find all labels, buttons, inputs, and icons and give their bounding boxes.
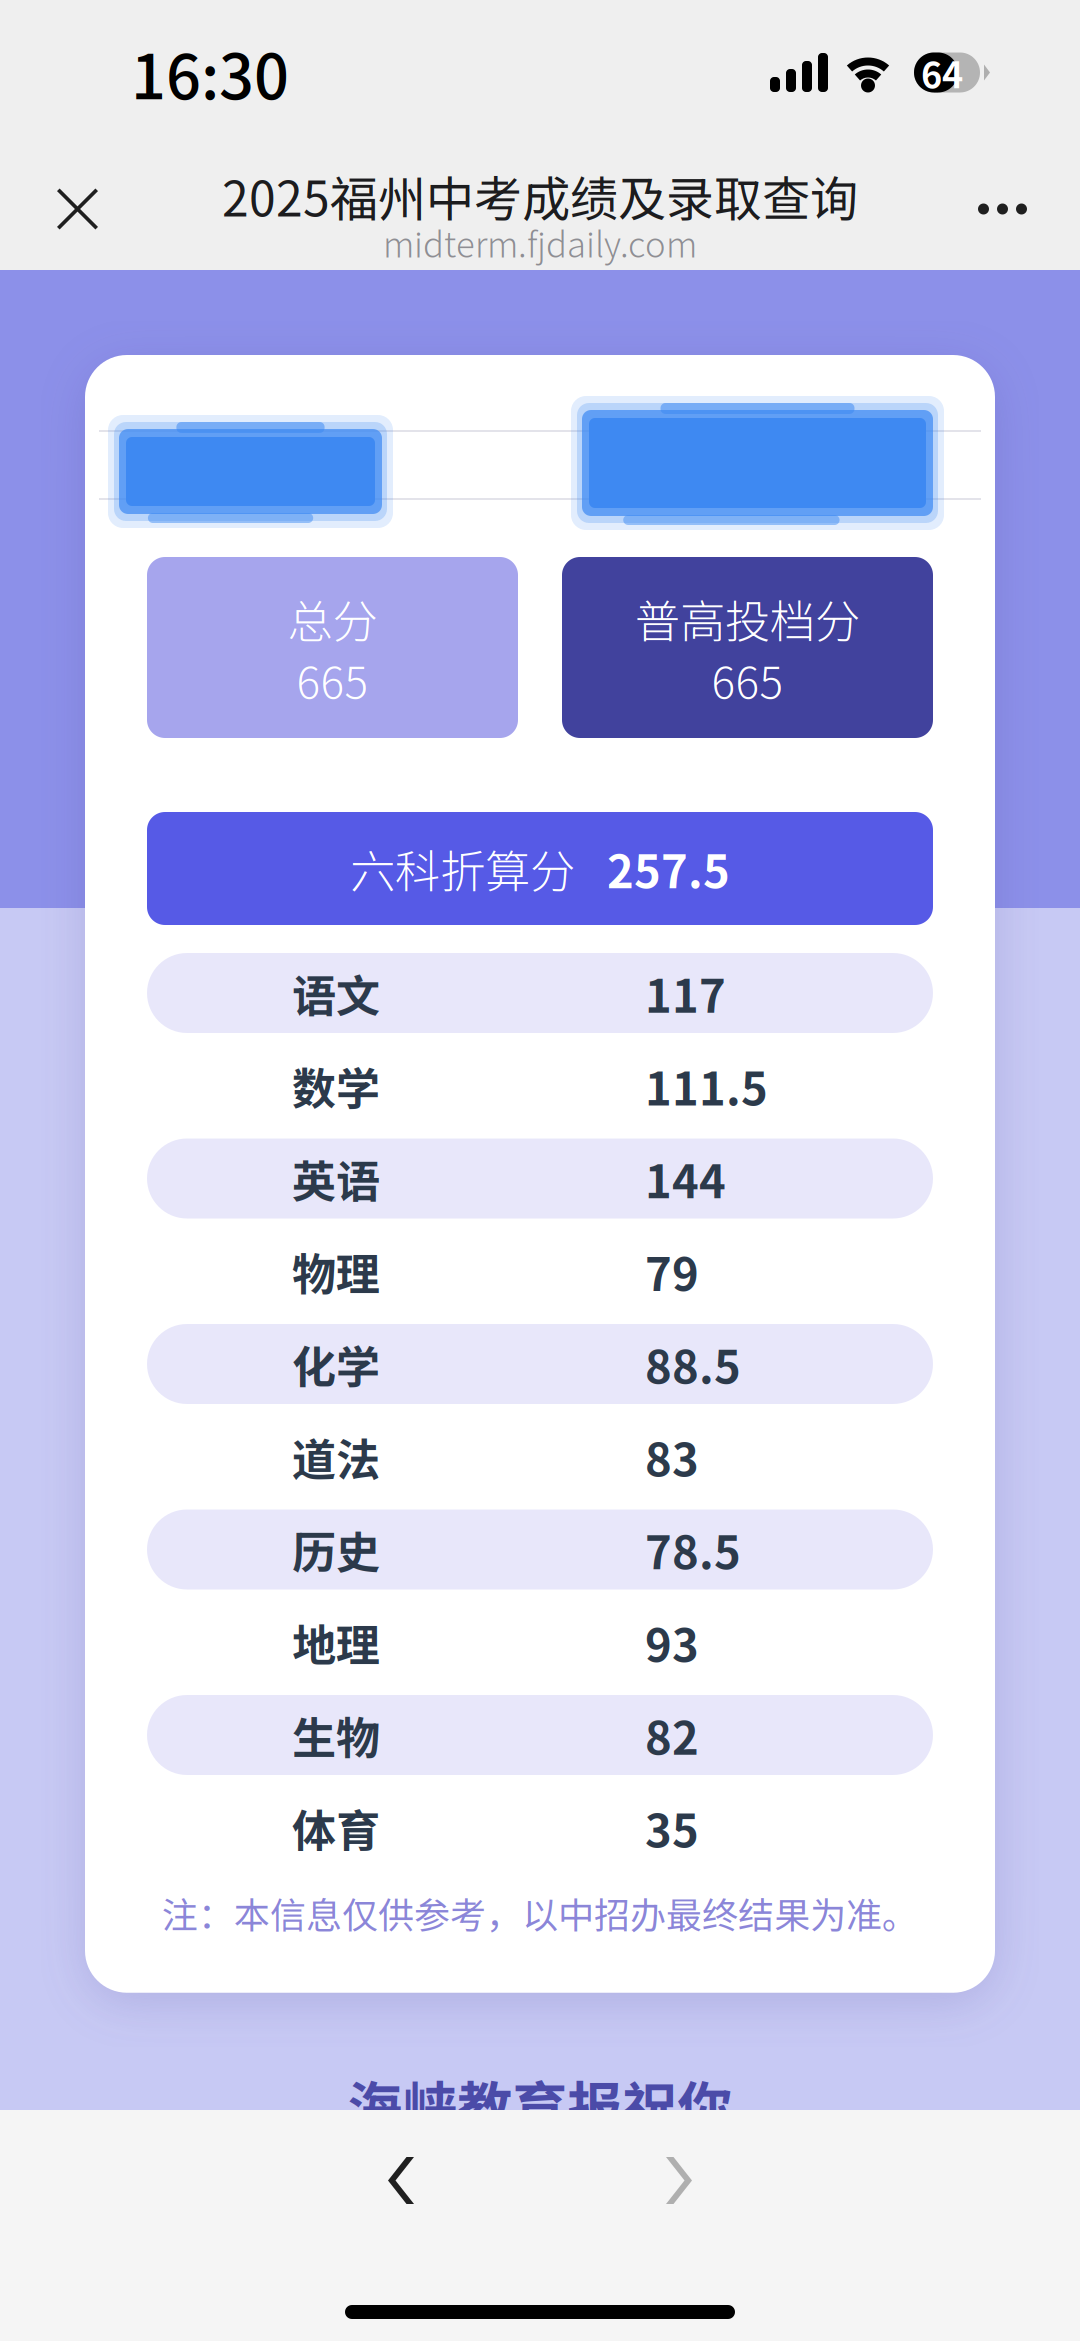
staticText: 语文: [292, 961, 380, 1025]
staticText: 79: [645, 1238, 699, 1304]
staticText: 88.5: [645, 1331, 741, 1397]
staticText: 117: [645, 960, 726, 1026]
staticText: midterm.fjdaily.com: [383, 217, 697, 268]
staticText: 144: [645, 1146, 726, 1211]
staticText: 普高投档分: [635, 586, 860, 651]
staticText: 注：本信息仅供参考，以中招办最终结果为准。: [162, 1887, 918, 1939]
button[interactable]: Close: [29, 162, 126, 255]
staticText: 83: [645, 1424, 699, 1489]
staticText: 海峡教育报祝你: [347, 2064, 732, 2143]
button[interactable]: Forward: [626, 2129, 732, 2232]
staticText: 化学: [292, 1332, 380, 1396]
staticText: 六科折算分: [350, 836, 575, 901]
staticText: 93: [645, 1609, 699, 1675]
staticText: 地理: [292, 1610, 380, 1674]
staticText: 82: [645, 1702, 699, 1768]
staticText: 665: [296, 648, 368, 711]
staticText: 总分: [287, 586, 377, 651]
staticText: 64: [921, 46, 963, 98]
staticText: 历史: [292, 1518, 380, 1581]
button[interactable]: Back: [348, 2129, 454, 2232]
staticText: 111.5: [645, 1053, 768, 1118]
staticText: 257.5: [607, 836, 730, 901]
staticText: 2025福州中考成绩及录取查询: [222, 161, 858, 230]
staticText: 道法: [292, 1425, 380, 1489]
staticText: 35: [645, 1795, 699, 1860]
staticText: 16:30: [131, 28, 289, 117]
staticText: 英语: [292, 1147, 380, 1210]
button[interactable]: More: [954, 162, 1051, 255]
staticText: 数学: [292, 1054, 380, 1118]
staticText: 665: [711, 648, 783, 711]
staticText: 78.5: [645, 1517, 741, 1582]
staticText: 生物: [292, 1703, 380, 1767]
staticText: 物理: [292, 1239, 380, 1303]
staticText: 体育: [292, 1796, 380, 1860]
